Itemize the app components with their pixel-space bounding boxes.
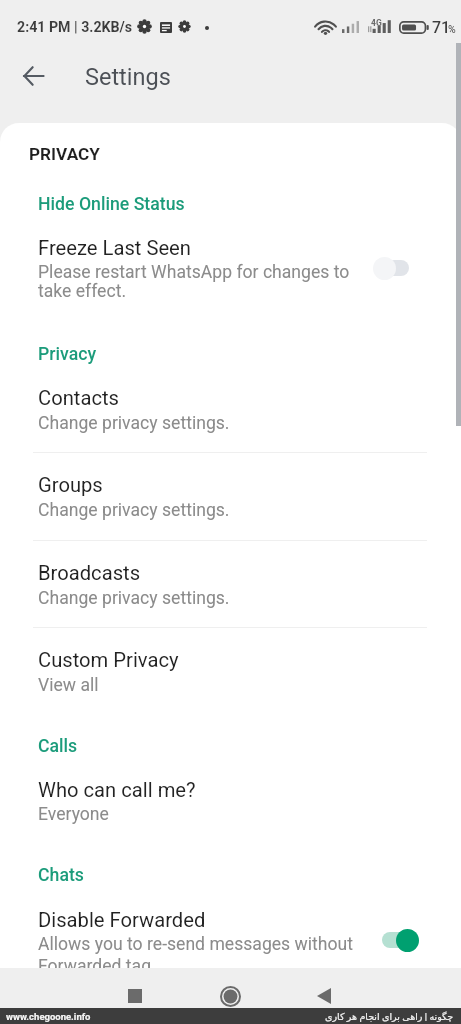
- button[interactable]: Disable Forwarded on: [373, 925, 420, 955]
- button[interactable]: [0, 764, 461, 850]
- staticText: Change privacy settings.: [38, 413, 230, 434]
- staticText: Contacts: [38, 386, 119, 410]
- staticText: View all: [38, 675, 99, 696]
- staticText: Settings: [85, 63, 171, 91]
- staticText: Disable Forwarded: [38, 908, 206, 932]
- staticText: Allows you to re-send messages without F…: [38, 934, 353, 968]
- staticText: Hide Online Status: [38, 194, 185, 215]
- button[interactable]: [0, 224, 461, 310]
- button[interactable]: [0, 635, 461, 721]
- button[interactable]: [0, 895, 461, 968]
- button[interactable]: Recent apps: [115, 976, 155, 1016]
- staticText: Calls: [38, 736, 78, 757]
- staticText: %: [448, 23, 456, 35]
- staticText: Everyone: [38, 804, 109, 825]
- staticText: 2:41 PM | 3.2KB/s: [17, 19, 133, 36]
- button[interactable]: Back: [304, 976, 344, 1016]
- button[interactable]: Freeze Last Seen off: [373, 253, 420, 283]
- button[interactable]: Home: [210, 976, 250, 1016]
- staticText: Who can call me?: [38, 778, 196, 802]
- staticText: Freeze Last Seen: [38, 236, 191, 260]
- staticText: Please restart WhatsApp for changes to t…: [38, 262, 350, 301]
- staticText: 4G: [371, 18, 382, 28]
- staticText: Change privacy settings.: [38, 588, 230, 609]
- button[interactable]: Back: [13, 56, 53, 96]
- staticText: PRIVACY: [29, 144, 101, 164]
- staticText: Privacy: [38, 344, 97, 365]
- staticText: Chats: [38, 865, 84, 886]
- button[interactable]: [0, 460, 461, 546]
- button[interactable]: [0, 547, 461, 633]
- staticText: چگونه | راهی برای انجام هر کاری: [325, 1011, 454, 1022]
- button[interactable]: [0, 372, 461, 458]
- staticText: Broadcasts: [38, 561, 141, 585]
- staticText: www.chegoone.info: [6, 1011, 91, 1022]
- staticText: Groups: [38, 473, 103, 497]
- staticText: Custom Privacy: [38, 648, 179, 672]
- staticText: 71: [432, 18, 451, 37]
- staticText: Change privacy settings.: [38, 500, 230, 521]
